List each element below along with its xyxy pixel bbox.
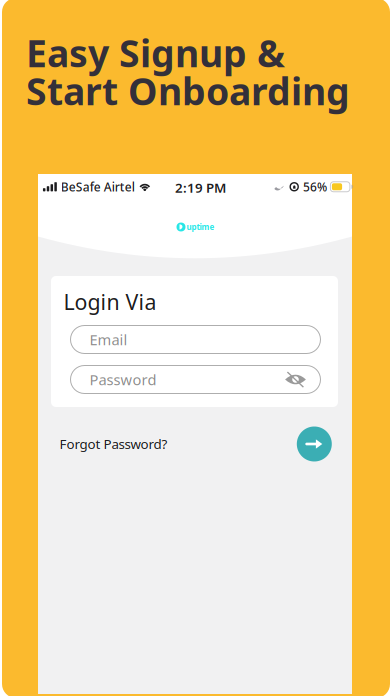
button[interactable]: Continue [297, 426, 332, 461]
button[interactable]: Password [70, 365, 320, 393]
staticText: Login Via [63, 287, 156, 316]
staticText: Email [89, 330, 127, 349]
staticText: Easy Signup & [26, 28, 285, 78]
staticText: Start Onboarding [26, 66, 350, 116]
staticText: 56% [303, 179, 327, 195]
staticText: Forgot Password? [59, 435, 167, 453]
staticText: uptime [186, 222, 214, 232]
staticText: BeSafe Airtel [61, 179, 135, 195]
staticText: Password [89, 370, 156, 389]
button[interactable]: Forgot Password? [59, 435, 167, 453]
button[interactable]: Email [70, 325, 320, 353]
staticText: 2:19 PM [175, 179, 226, 196]
